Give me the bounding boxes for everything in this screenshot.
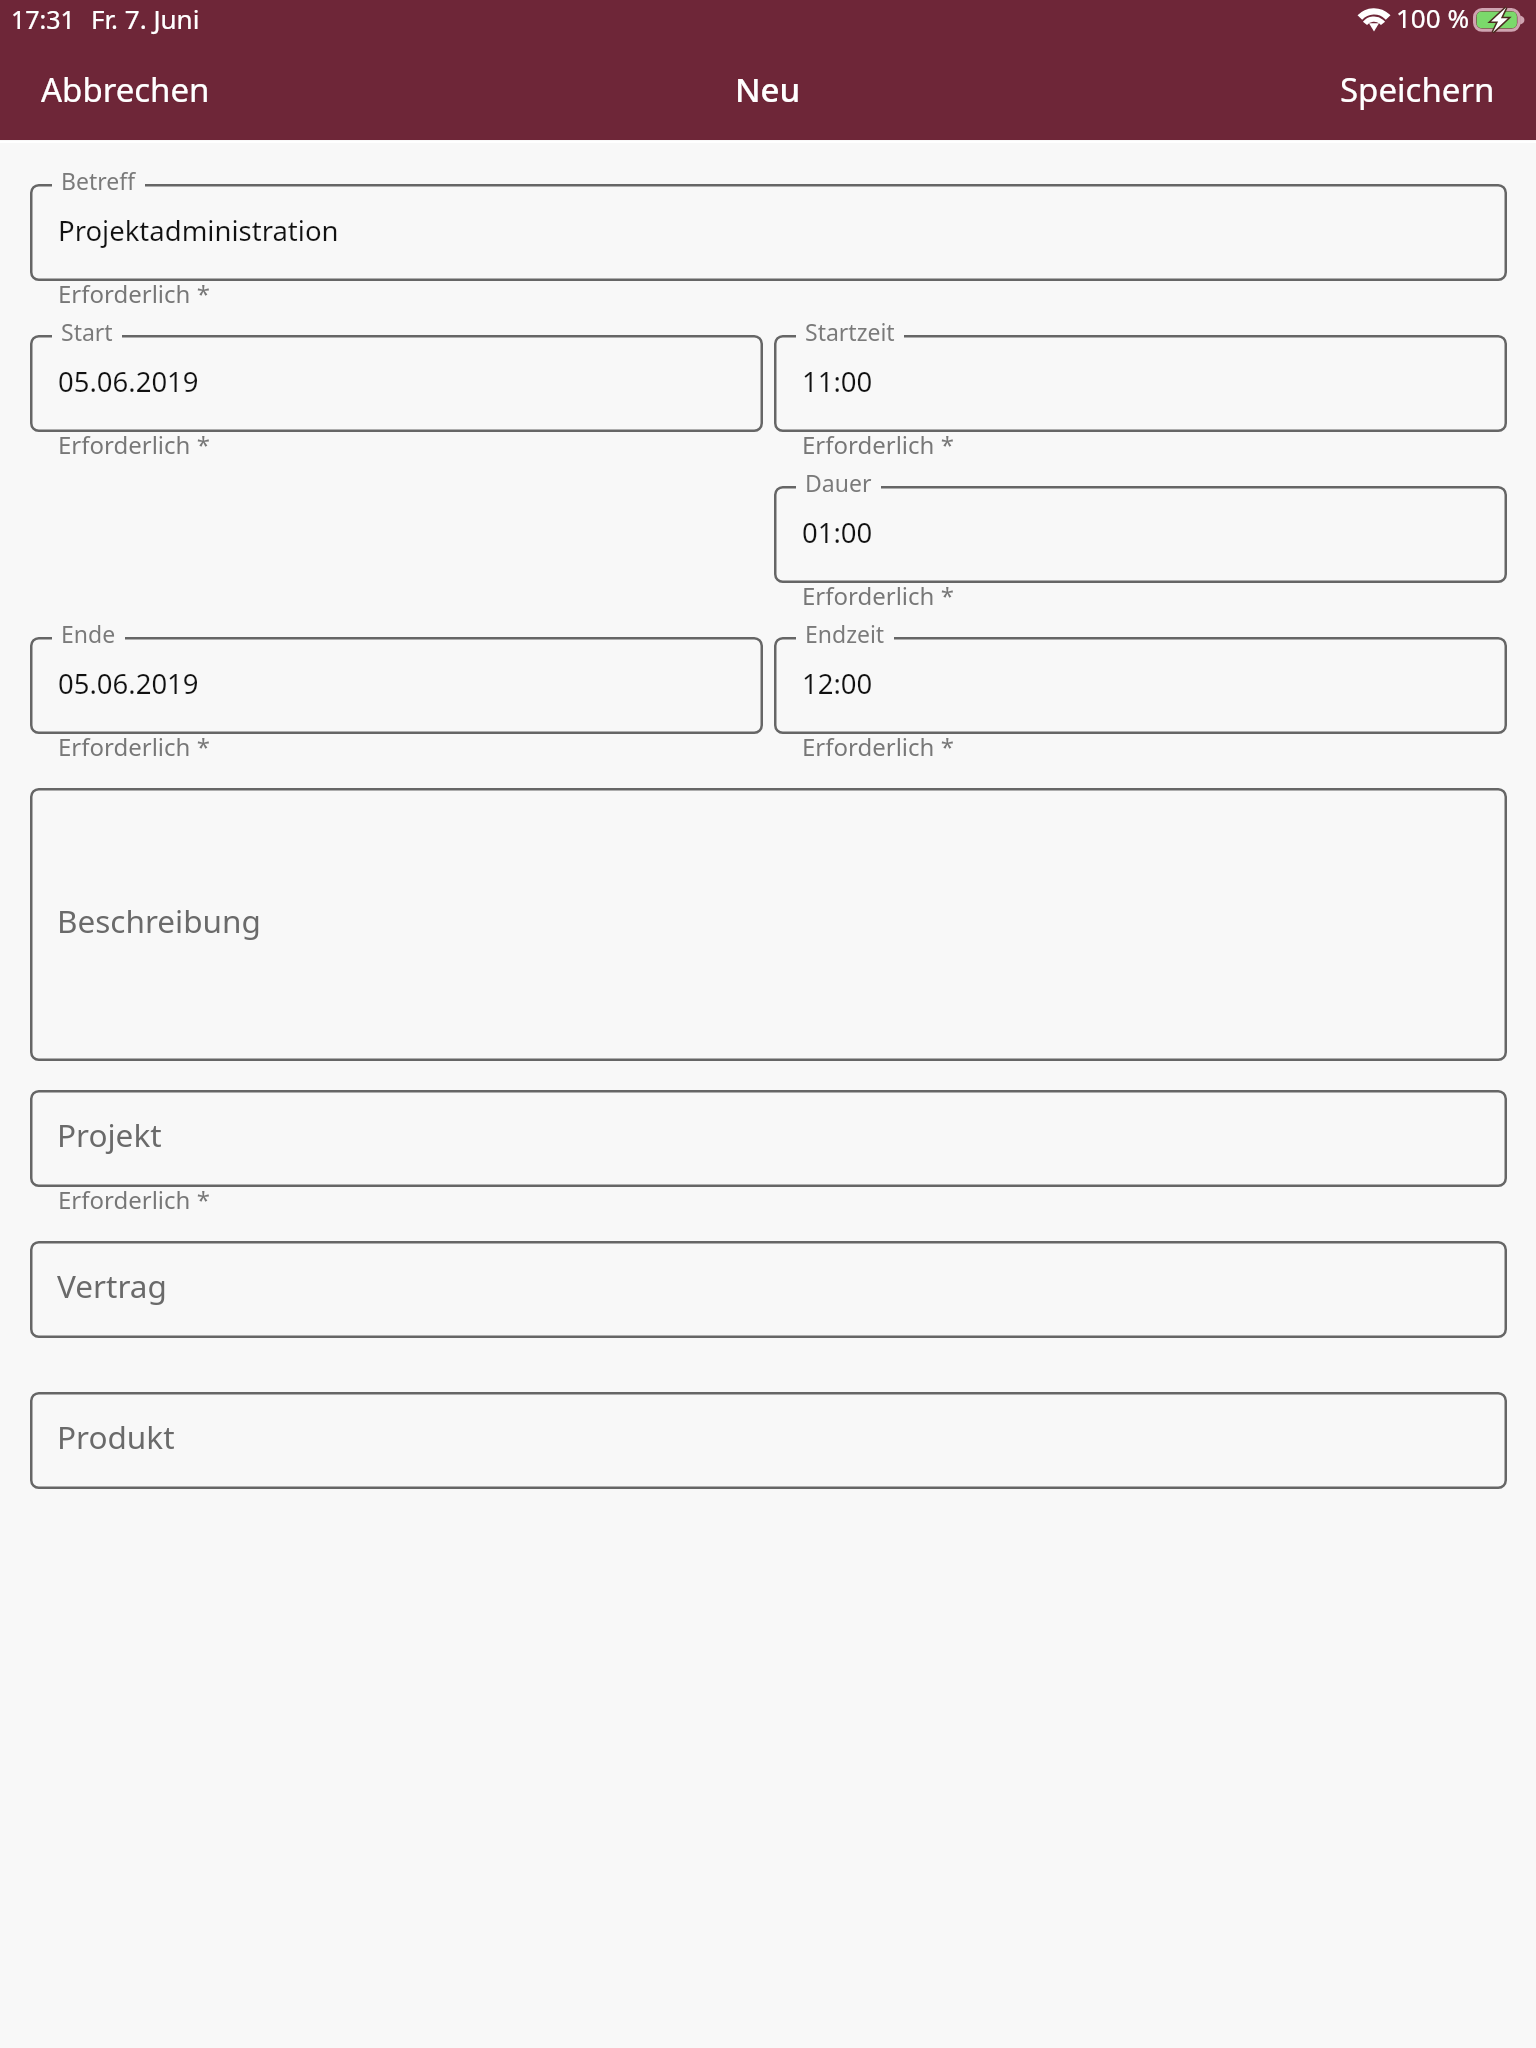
staticText: Produkt [57,1415,175,1458]
staticText: Ende [61,618,116,649]
staticText: Abbrechen [41,67,210,112]
staticText: Vertrag [57,1264,167,1307]
staticText: Dauer [805,467,872,498]
staticText: 05.06.2019 [58,363,199,400]
other: WLAN [1359,8,1389,31]
button[interactable]: Projekt [30,1090,1507,1187]
staticText: Projekt [57,1113,162,1156]
staticText: Projektadministration [58,212,339,249]
button[interactable]: Beschreibung [30,788,1507,1061]
staticText: Start [61,316,113,347]
staticText: Erforderlich * [58,730,210,763]
button[interactable]: Start [30,335,763,432]
staticText: Erforderlich * [802,428,954,461]
staticText: Erforderlich * [58,428,210,461]
staticText: Beschreibung [57,899,261,942]
staticText: Endzeit [805,618,885,649]
staticText: Speichern [1340,67,1495,112]
button[interactable]: Vertrag [30,1241,1507,1338]
button[interactable]: Abbrechen [0,47,251,132]
staticText: 11:00 [802,363,873,400]
staticText: 12:00 [802,665,873,702]
staticText: Betreff [61,165,136,196]
staticText: Erforderlich * [802,579,954,612]
staticText: Neu [735,67,801,112]
staticText: Erforderlich * [58,277,210,310]
staticText: 17:31 [11,2,75,36]
button[interactable]: Endzeit [774,637,1507,734]
other: Akku [1473,8,1526,32]
button[interactable]: Startzeit [774,335,1507,432]
staticText: 100 % [1396,0,1469,35]
button[interactable]: Produkt [30,1392,1507,1489]
staticText: Fr. 7. Juni [91,1,200,36]
button[interactable]: Ende [30,637,763,734]
button[interactable]: Speichern [1299,47,1536,132]
staticText: Startzeit [805,316,895,347]
staticText: Erforderlich * [58,1183,210,1216]
button[interactable]: Dauer [774,486,1507,583]
button[interactable]: Betreff [30,184,1507,281]
staticText: Erforderlich * [802,730,954,763]
staticText: 05.06.2019 [58,665,199,702]
staticText: 01:00 [802,514,873,551]
